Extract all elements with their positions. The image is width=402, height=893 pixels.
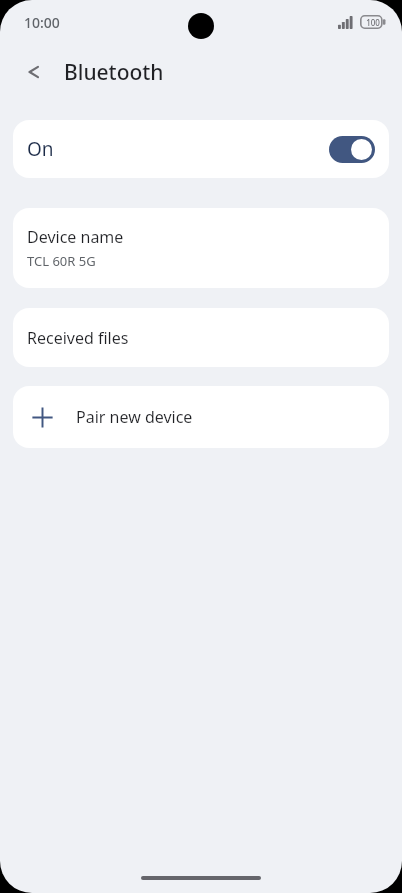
staticText: On [27,136,54,162]
staticText: Received files [27,327,129,349]
staticText: Bluetooth [64,58,164,87]
button[interactable]: On [13,120,389,178]
button[interactable]: Received files [13,308,389,367]
staticText: 100 [363,17,383,28]
staticText: Pair new device [76,406,193,428]
staticText: TCL 60R 5G [27,252,96,270]
staticText: 10:00 [24,13,60,32]
staticText: Device name [27,226,124,248]
button[interactable]: Back [12,50,56,94]
button[interactable]: Pair new device [13,386,389,448]
other: Bluetooth toggle, on [329,136,375,163]
button[interactable]: Device name [13,208,389,288]
